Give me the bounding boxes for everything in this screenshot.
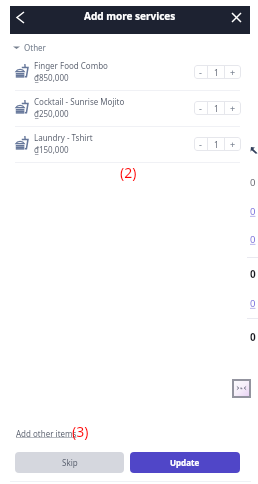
button[interactable]: Add other items — [16, 428, 77, 439]
button[interactable]: Decrease quantity — [194, 65, 207, 79]
button[interactable]: Increase quantity — [225, 101, 241, 115]
staticText: (2) — [120, 163, 137, 182]
staticText: + — [230, 66, 236, 78]
button[interactable]: Image placeholder — [234, 381, 249, 396]
staticText: 1 — [214, 103, 219, 114]
staticText: ₫150,000 — [34, 144, 69, 155]
button[interactable]: Skip — [15, 452, 124, 473]
button[interactable]: Finger Food Combo — [0, 55, 258, 91]
staticText: Update — [170, 457, 200, 468]
staticText: + — [230, 138, 236, 150]
button[interactable]: Increase quantity — [225, 65, 241, 79]
staticText: 0 — [250, 233, 256, 246]
button[interactable]: Back — [10, 7, 30, 28]
staticText: Skip — [62, 457, 78, 468]
staticText: Add more services — [84, 9, 176, 23]
staticText: 0 — [250, 330, 256, 344]
button[interactable]: Close — [224, 7, 248, 28]
staticText: - — [199, 66, 202, 78]
button[interactable]: Laundry - Tshirt — [0, 127, 258, 163]
staticText: Other — [24, 42, 46, 53]
staticText: - — [199, 102, 202, 114]
staticText: 0 — [250, 205, 256, 218]
staticText: 0 — [250, 176, 256, 189]
staticText: ₫850,000 — [34, 72, 69, 83]
staticText: 1 — [214, 139, 219, 150]
staticText: 0 — [250, 267, 256, 281]
button[interactable]: Decrease quantity — [194, 137, 207, 151]
staticText: 1 — [214, 67, 219, 78]
staticText: ₫250,000 — [34, 108, 69, 119]
staticText: + — [230, 102, 236, 114]
button[interactable]: Decrease quantity — [194, 101, 207, 115]
staticText: Cocktail - Sunrise Mojito — [34, 96, 125, 107]
button[interactable]: Other — [10, 41, 52, 54]
staticText: Finger Food Combo — [34, 60, 108, 71]
staticText: - — [199, 138, 202, 150]
staticText: 0 — [250, 297, 256, 310]
button[interactable]: Cocktail - Sunrise Mojito — [0, 91, 258, 127]
staticText: Laundry - Tshirt — [34, 132, 93, 143]
button[interactable]: Update — [130, 452, 240, 473]
staticText: (3) — [72, 422, 89, 441]
button[interactable]: Increase quantity — [225, 137, 241, 151]
